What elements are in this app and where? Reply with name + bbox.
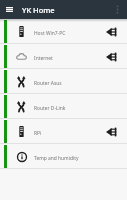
- button[interactable]: Host Win7-PC: [0, 19, 127, 44]
- button[interactable]: Internet: [0, 44, 127, 69]
- staticText: Host Win7-PC: [34, 30, 66, 37]
- button[interactable]: Open navigation menu: [0, 0, 18, 19]
- button[interactable]: Router Asus: [0, 69, 127, 94]
- button[interactable]: More options: [108, 0, 127, 19]
- staticText: RPi: [34, 130, 42, 137]
- staticText: Temp and humidity: [34, 155, 79, 162]
- button[interactable]: Temp and humidity: [0, 144, 127, 169]
- staticText: Router D-Link: [34, 105, 66, 112]
- button[interactable]: Router D-Link: [0, 94, 127, 119]
- button[interactable]: RPi: [0, 119, 127, 144]
- staticText: YK Home: [22, 5, 55, 15]
- staticText: Internet: [34, 55, 53, 62]
- staticText: Router Asus: [34, 80, 62, 87]
